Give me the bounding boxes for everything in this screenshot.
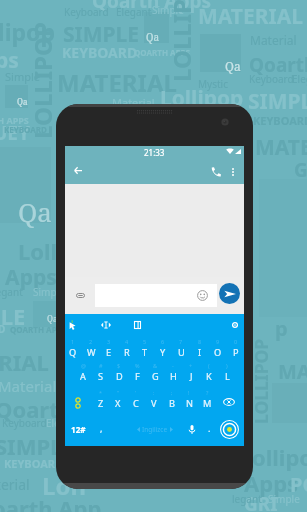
staticText: SIMPL xyxy=(0,431,63,461)
staticText: H xyxy=(170,370,177,383)
button[interactable]: Shift xyxy=(71,394,85,412)
staticText: MAT xyxy=(278,358,307,385)
button[interactable]: + xyxy=(182,363,200,387)
button[interactable]: - xyxy=(164,363,182,387)
staticText: P xyxy=(233,346,239,359)
staticText: A xyxy=(80,370,86,383)
staticText: 6 xyxy=(161,338,165,345)
staticText: Keyboard xyxy=(249,72,294,86)
button[interactable]: Backspace xyxy=(218,390,240,413)
staticText: 12# xyxy=(71,424,86,435)
staticText: Qa xyxy=(146,30,160,44)
button[interactable]: . xyxy=(203,418,215,440)
button[interactable]: " xyxy=(109,390,127,414)
button[interactable]: Send xyxy=(219,283,240,304)
staticText: KEYBOARD xyxy=(4,124,47,135)
button[interactable]: Clipboard xyxy=(130,317,144,333)
button[interactable]: Select text xyxy=(65,317,79,333)
staticText: V xyxy=(151,397,157,410)
staticText: 0 xyxy=(234,338,238,345)
staticText: G xyxy=(152,370,159,383)
staticText: G xyxy=(294,157,307,183)
staticText: W xyxy=(87,346,96,359)
button[interactable]: Emoji xyxy=(197,290,208,301)
staticText: Qoarth Apps xyxy=(92,0,212,14)
staticText: KEYBOARD xyxy=(253,113,307,128)
button[interactable]: Call xyxy=(206,159,226,184)
button[interactable]: ! xyxy=(180,390,198,414)
staticText: 21:33 xyxy=(144,147,165,158)
button[interactable]: Attach xyxy=(72,289,88,301)
button[interactable]: ' xyxy=(127,390,145,414)
staticText: Keyboard xyxy=(2,416,47,430)
staticText: ERIAL xyxy=(0,347,49,377)
staticText: : xyxy=(153,389,155,396)
button[interactable]: % xyxy=(128,363,146,387)
button[interactable]: ( xyxy=(200,363,218,387)
button[interactable]: Back xyxy=(68,159,88,184)
staticText: O xyxy=(214,346,222,359)
staticText: QOARTH APPS xyxy=(10,324,66,335)
button[interactable]: # xyxy=(92,363,110,387)
button[interactable]: 5 xyxy=(136,339,154,363)
staticText: GRI xyxy=(244,491,278,512)
staticText: Material xyxy=(0,376,57,396)
button[interactable]: Settings xyxy=(228,318,242,332)
button[interactable]: 9 xyxy=(209,339,227,363)
button[interactable]: , xyxy=(94,418,109,440)
staticText: Elegant xyxy=(116,5,152,19)
staticText: n Apps xyxy=(0,263,57,292)
button[interactable]: $ xyxy=(110,363,128,387)
button[interactable]: Move cursor xyxy=(99,317,113,333)
staticText: TH APPS xyxy=(0,114,29,126)
staticText: & xyxy=(153,362,158,369)
staticText: Q xyxy=(69,346,77,359)
staticText: . xyxy=(208,422,211,434)
button[interactable]: : xyxy=(145,390,163,414)
staticText: E xyxy=(106,346,112,359)
button[interactable]: ? xyxy=(198,390,216,414)
button[interactable]: ; xyxy=(163,390,181,414)
button[interactable]: Enter xyxy=(220,420,239,439)
button[interactable]: 1 xyxy=(64,339,82,363)
staticText: Lollipop xyxy=(160,84,244,113)
staticText: Simple xyxy=(33,285,65,299)
staticText: ! xyxy=(188,389,190,396)
staticText: QOARTH APPS xyxy=(134,47,190,58)
staticText: SIMPL xyxy=(248,87,307,116)
staticText: Z xyxy=(98,397,104,410)
staticText: ( xyxy=(208,362,210,369)
staticText: Material xyxy=(112,95,155,110)
staticText: " xyxy=(117,389,120,396)
staticText: 7 xyxy=(179,338,183,345)
button[interactable]: More options xyxy=(225,159,240,184)
staticText: 1 xyxy=(71,338,75,345)
button[interactable]: Voice input xyxy=(185,418,199,440)
button[interactable]: 6 xyxy=(154,339,172,363)
staticText: J xyxy=(190,370,193,383)
staticText: Simple xyxy=(152,3,184,17)
button[interactable]: 0 xyxy=(227,339,245,363)
staticText: D xyxy=(116,370,123,383)
button[interactable]: 2 xyxy=(82,339,100,363)
staticText: ollipop xyxy=(252,442,307,472)
button[interactable]: 3 xyxy=(100,339,118,363)
staticText: Ingilizce xyxy=(142,425,168,434)
staticText: Qa xyxy=(47,313,58,324)
button[interactable]: * xyxy=(92,390,110,414)
staticText: UEY xyxy=(0,120,30,146)
button[interactable]: & xyxy=(146,363,164,387)
button[interactable]: Ingilizce xyxy=(127,418,183,440)
button[interactable]: 12# xyxy=(68,418,88,440)
button[interactable]: 4 xyxy=(118,339,136,363)
staticText: 8 xyxy=(198,338,202,345)
button[interactable]: ) xyxy=(218,363,236,387)
button[interactable]: 8 xyxy=(191,339,209,363)
staticText: POP xyxy=(290,471,307,498)
button[interactable]: 7 xyxy=(172,339,190,363)
button[interactable]: @ xyxy=(74,363,92,387)
staticText: I xyxy=(198,346,202,359)
staticText: # xyxy=(99,362,103,369)
staticText: Elega xyxy=(292,72,307,86)
staticText: legant xyxy=(0,285,23,299)
